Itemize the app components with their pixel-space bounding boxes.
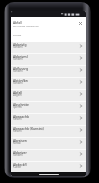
staticText: Abfall <box>13 90 23 94</box>
button[interactable]: Abdeckfl <box>11 162 86 172</box>
button[interactable]: Abwaschb (Kunstst) <box>11 126 86 137</box>
staticText: Metall <box>13 141 21 145</box>
staticText: Abwaschb (Kunstst) <box>13 126 44 130</box>
staticText: Sondml <box>13 57 23 61</box>
staticText: Abdeckfl <box>13 162 27 166</box>
staticText: Sondml <box>13 69 23 73</box>
button[interactable]: Abschntte <box>11 102 86 113</box>
staticText: Abflussrg <box>13 66 28 70</box>
button[interactable]: Abtönfbn <box>11 78 86 89</box>
staticText: Abschntte <box>13 102 29 106</box>
staticText: Abtönfbn <box>13 78 28 82</box>
button[interactable]: Abreisen <box>11 138 86 149</box>
staticText: Allgem <box>13 93 22 97</box>
button[interactable]: Abwaschb <box>11 114 86 125</box>
staticText: Kunstf <box>13 165 22 169</box>
button[interactable]: Abbeizlg <box>11 42 86 53</box>
staticText: Sperml <box>13 105 22 109</box>
button[interactable]: Abbeizml <box>11 54 86 65</box>
button[interactable]: Abbeizer <box>11 150 86 161</box>
staticText: Sondml <box>13 81 23 85</box>
staticText: Abreisen <box>13 138 27 142</box>
staticText: Sondml <box>13 45 23 49</box>
staticText: Abbeizer <box>13 150 27 154</box>
staticText: Sondml <box>13 153 23 157</box>
staticText: Abbeizml <box>13 54 28 58</box>
staticText: Der richtige Umgang mit <box>13 25 39 28</box>
staticText: Abwaschb <box>13 114 30 118</box>
staticText: Abfall <box>13 21 22 25</box>
button[interactable]: Abflussrg <box>11 66 86 77</box>
button[interactable]: Close <box>76 19 85 28</box>
button[interactable]: Abfall <box>11 90 86 101</box>
staticText: Restml <box>13 117 22 121</box>
button[interactable]: Suchen <box>11 30 86 39</box>
staticText: Restml <box>13 129 22 133</box>
staticText: Abbeizlg <box>13 42 27 46</box>
staticText: Suchen <box>13 33 22 36</box>
